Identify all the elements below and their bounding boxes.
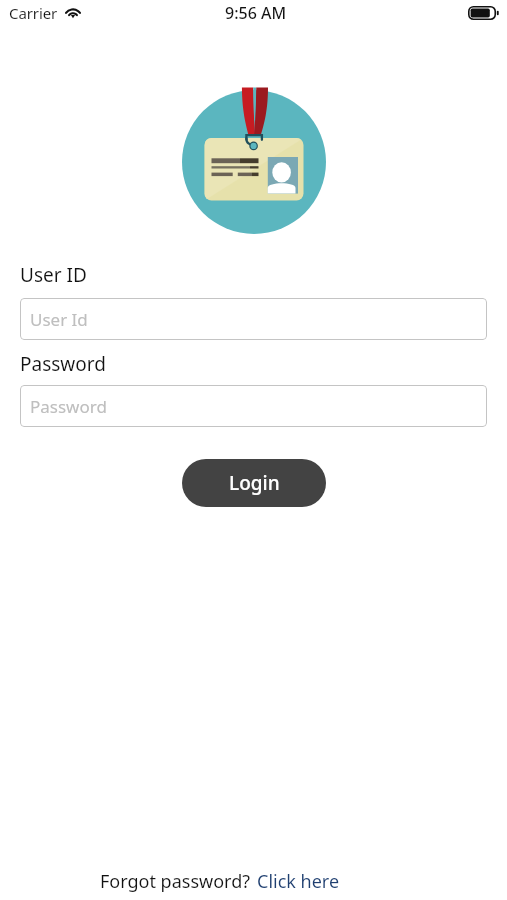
staticText: Click here: [257, 869, 340, 894]
staticText: Forgot password?: [100, 869, 251, 894]
button[interactable]: Login: [182, 459, 326, 507]
other: Battery full: [468, 6, 499, 20]
staticText: 9:56 AM: [225, 2, 287, 24]
staticText: Carrier: [9, 3, 58, 23]
staticText: Login: [229, 470, 280, 496]
staticText: Password: [30, 395, 107, 418]
button[interactable]: Click here: [257, 869, 340, 894]
button[interactable]: User Id: [20, 298, 487, 340]
other: Wi-Fi signal: [64, 6, 82, 20]
button[interactable]: Password: [20, 385, 487, 427]
staticText: Password: [20, 351, 106, 377]
staticText: User Id: [30, 308, 88, 331]
staticText: User ID: [20, 262, 87, 288]
